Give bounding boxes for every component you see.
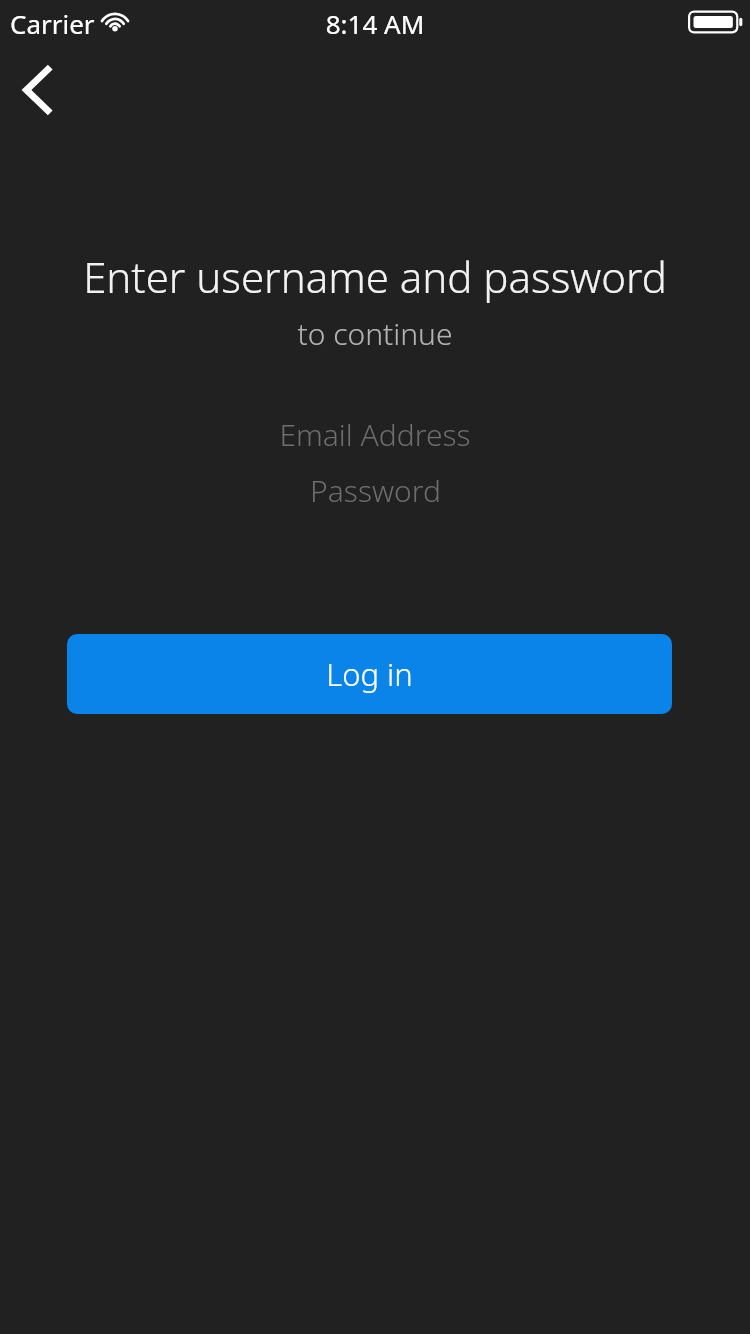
- staticText: 8:14 AM: [0, 6, 750, 41]
- button[interactable]: Email Address: [0, 406, 750, 462]
- button[interactable]: Back: [0, 52, 76, 128]
- button[interactable]: Log in: [67, 634, 672, 714]
- staticText: Log in: [326, 653, 413, 695]
- staticText: Password: [310, 470, 441, 511]
- staticText: Email Address: [279, 414, 471, 455]
- button[interactable]: Password: [0, 462, 750, 518]
- staticText: to continue: [0, 313, 750, 354]
- staticText: Enter username and password: [0, 248, 750, 305]
- staticText: Carrier: [10, 6, 95, 41]
